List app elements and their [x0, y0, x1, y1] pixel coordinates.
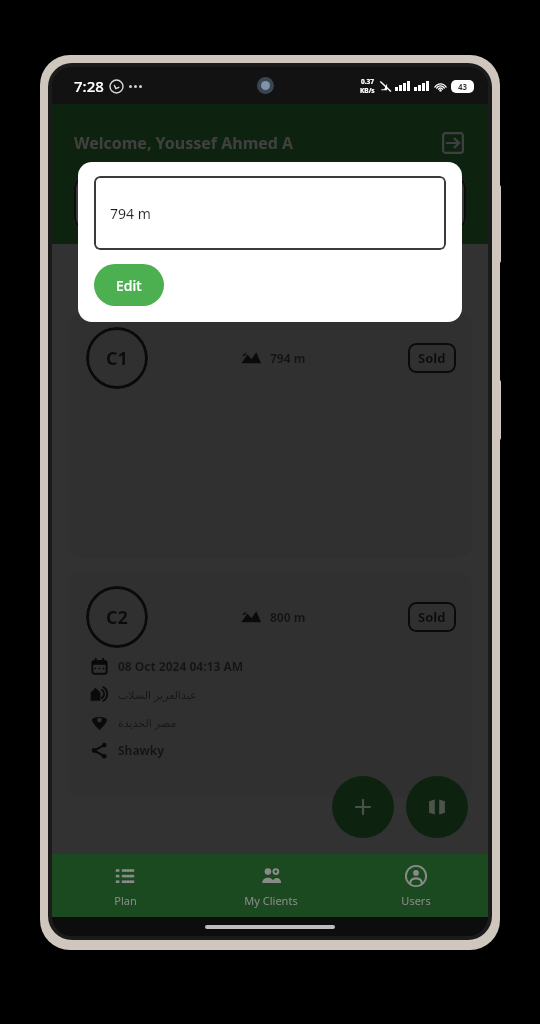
button[interactable]: Plan	[52, 858, 198, 914]
staticText: C1	[106, 346, 128, 371]
staticText: Welcome, Youssef Ahmed A	[74, 132, 294, 154]
button[interactable]: Logout	[436, 126, 470, 160]
staticText: Shawky	[118, 742, 165, 758]
button[interactable]: Sold	[418, 608, 446, 626]
staticText: My Clients	[244, 893, 298, 908]
button[interactable]: All	[78, 262, 131, 295]
staticText: Users	[401, 893, 431, 908]
staticText: 0.37	[361, 77, 374, 86]
staticText: Search	[120, 192, 171, 214]
button[interactable]: Add	[332, 776, 394, 838]
button[interactable]: Users	[343, 858, 488, 914]
staticText: Sold	[418, 608, 446, 626]
staticText: 08 Oct 2024 04:13 AM	[118, 658, 244, 674]
button[interactable]: 794 m	[94, 176, 446, 250]
staticText: Plan	[114, 893, 137, 908]
staticText: 794 m	[270, 350, 306, 366]
staticText: KB/s	[360, 86, 375, 95]
staticText: 7:28	[74, 76, 104, 96]
button[interactable]: Sold	[418, 349, 446, 367]
staticText: Edit	[116, 276, 142, 295]
staticText: عبدالعزيز السلاب	[118, 687, 197, 702]
button[interactable]: Search	[74, 176, 466, 230]
button[interactable]: C1	[68, 313, 472, 558]
staticText: C2	[106, 605, 128, 630]
staticText: All	[96, 270, 113, 288]
button[interactable]: Available	[139, 262, 227, 295]
staticText: Sold	[418, 349, 446, 367]
button[interactable]: C2	[68, 572, 472, 797]
staticText: مصر الجديدة	[118, 715, 177, 730]
staticText: 794 m	[110, 204, 151, 223]
staticText: Available	[153, 270, 213, 288]
button[interactable]: Edit	[94, 264, 164, 306]
button[interactable]: My Clients	[198, 858, 343, 914]
staticText: 43	[458, 81, 468, 92]
button[interactable]: Map	[406, 776, 468, 838]
staticText: 800 m	[270, 609, 306, 625]
